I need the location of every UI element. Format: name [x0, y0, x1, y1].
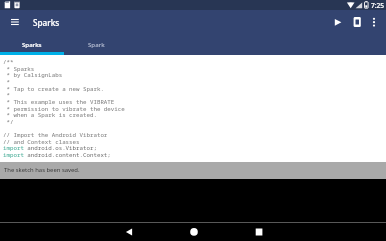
staticText: * Sparks	[3, 65, 35, 73]
button[interactable]: Spark	[64, 33, 128, 55]
button[interactable]: Run sketch	[328, 10, 348, 33]
staticText: */	[3, 118, 14, 126]
button[interactable]: Open navigation drawer	[5, 14, 21, 30]
staticText: /**	[3, 58, 14, 66]
staticText: import android.os.Vibrator;	[3, 144, 97, 152]
button[interactable]: Recent apps	[226, 222, 291, 241]
staticText: * This example uses the VIBRATE	[3, 98, 115, 106]
staticText: Sparks	[22, 40, 42, 48]
staticText: import android.content.Context;	[3, 151, 111, 159]
button[interactable]: Back	[96, 222, 161, 241]
button[interactable]: More options	[364, 10, 384, 33]
button[interactable]: Select device	[347, 10, 367, 33]
staticText: Spark	[88, 40, 105, 48]
staticText: * permission to vibrate the device	[3, 105, 125, 113]
staticText: * when a Spark is created.	[3, 111, 97, 119]
staticText: // Import the Android Vibrator	[3, 131, 108, 139]
button[interactable]: Home	[161, 222, 226, 241]
staticText: // and Context classes	[3, 138, 80, 146]
staticText: The sketch has been saved.	[4, 166, 80, 174]
button[interactable]: Sparks	[0, 33, 64, 55]
staticText: *	[3, 78, 10, 86]
staticText: *	[3, 91, 10, 99]
staticText: Sparks	[33, 17, 60, 28]
staticText: * by CalsignLabs	[3, 71, 63, 79]
staticText: 7:25	[371, 1, 385, 10]
staticText: * Tap to create a new Spark.	[3, 85, 104, 93]
